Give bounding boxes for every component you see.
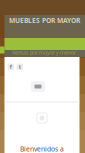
button[interactable]: Menu <box>31 81 45 92</box>
staticText: f <box>10 63 12 70</box>
staticText: Bienvenidos a <box>20 145 64 153</box>
button[interactable]: Facebook <box>7 63 14 70</box>
staticText: Ventas por mayor y menor <box>12 49 76 56</box>
button[interactable]: Twitter <box>16 63 23 70</box>
staticText: t <box>19 63 21 70</box>
staticText: MUEBLES POR MAYOR <box>9 16 80 25</box>
